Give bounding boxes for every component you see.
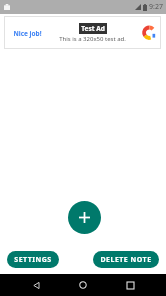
staticText: SETTINGS <box>14 255 52 265</box>
staticText: DELETE NOTE <box>100 255 152 265</box>
button[interactable]: DELETE NOTE <box>93 251 159 268</box>
staticText: 9:27 <box>149 2 163 12</box>
button[interactable]: Recents <box>119 274 141 296</box>
button[interactable]: Home <box>72 274 94 296</box>
staticText: Nice job! <box>13 29 42 38</box>
staticText: Test Ad <box>81 24 105 33</box>
button[interactable]: SETTINGS <box>7 251 59 268</box>
button[interactable]: Back <box>25 274 47 296</box>
staticText: This is a 320x50 test ad. <box>59 35 126 43</box>
button[interactable]: Add note <box>68 201 101 234</box>
button[interactable]: Nice job! <box>4 16 161 49</box>
